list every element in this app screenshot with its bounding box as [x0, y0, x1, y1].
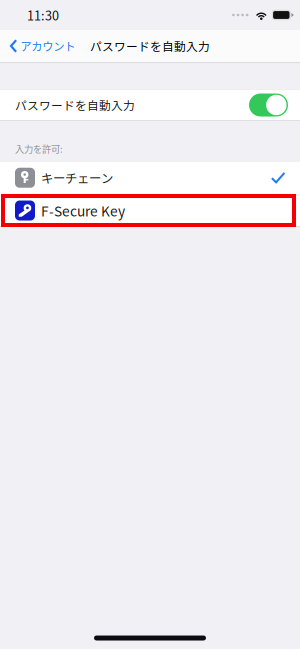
staticText: 入力を許可:	[15, 142, 63, 155]
button[interactable]: F-Secure Key	[0, 194, 300, 226]
button[interactable]: パスワードを自動入力	[0, 89, 300, 120]
staticText: F-Secure Key	[41, 201, 125, 220]
staticText: キーチェーン	[41, 169, 113, 187]
staticText: パスワードを自動入力	[15, 96, 135, 113]
button[interactable]: アカウント	[0, 33, 83, 59]
button[interactable]: キーチェーン	[0, 161, 300, 194]
staticText: 11:30	[27, 6, 59, 24]
staticText: アカウント	[20, 38, 75, 54]
staticText: パスワードを自動入力	[90, 37, 210, 54]
